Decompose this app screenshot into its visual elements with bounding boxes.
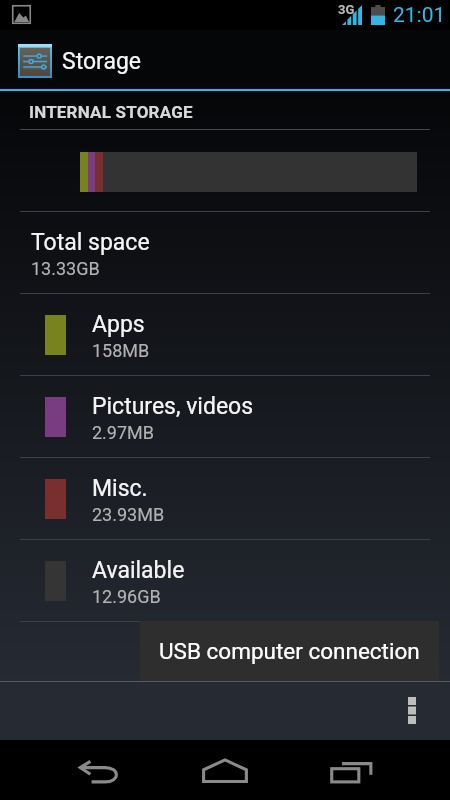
button[interactable]: USB computer connection: [140, 621, 439, 681]
staticText: 3G: [338, 2, 355, 17]
button[interactable]: Back: [37, 740, 163, 800]
staticText: 12.96GB: [92, 586, 161, 607]
button[interactable]: Misc.: [0, 458, 450, 539]
staticText: Total space: [31, 229, 150, 256]
button[interactable]: Available: [0, 540, 450, 621]
button[interactable]: Storage: [0, 30, 450, 89]
staticText: Storage: [62, 48, 142, 75]
staticText: INTERNAL STORAGE: [29, 102, 193, 122]
staticText: Misc.: [92, 475, 148, 502]
staticText: 158MB: [92, 340, 150, 361]
staticText: Pictures, videos: [92, 393, 254, 420]
button[interactable]: Pictures, videos: [0, 376, 450, 457]
staticText: Apps: [92, 311, 145, 338]
staticText: 21:01: [393, 3, 446, 28]
button[interactable]: Recent apps: [289, 740, 415, 800]
button[interactable]: Home: [163, 740, 289, 800]
button[interactable]: More options: [402, 681, 450, 740]
button[interactable]: Total space: [0, 212, 450, 293]
staticText: Available: [92, 557, 185, 584]
staticText: USB computer connection: [159, 638, 420, 664]
staticText: 23.93MB: [92, 504, 165, 525]
button[interactable]: Apps: [0, 294, 450, 375]
staticText: 13.33GB: [31, 258, 100, 279]
staticText: 2.97MB: [92, 422, 155, 443]
